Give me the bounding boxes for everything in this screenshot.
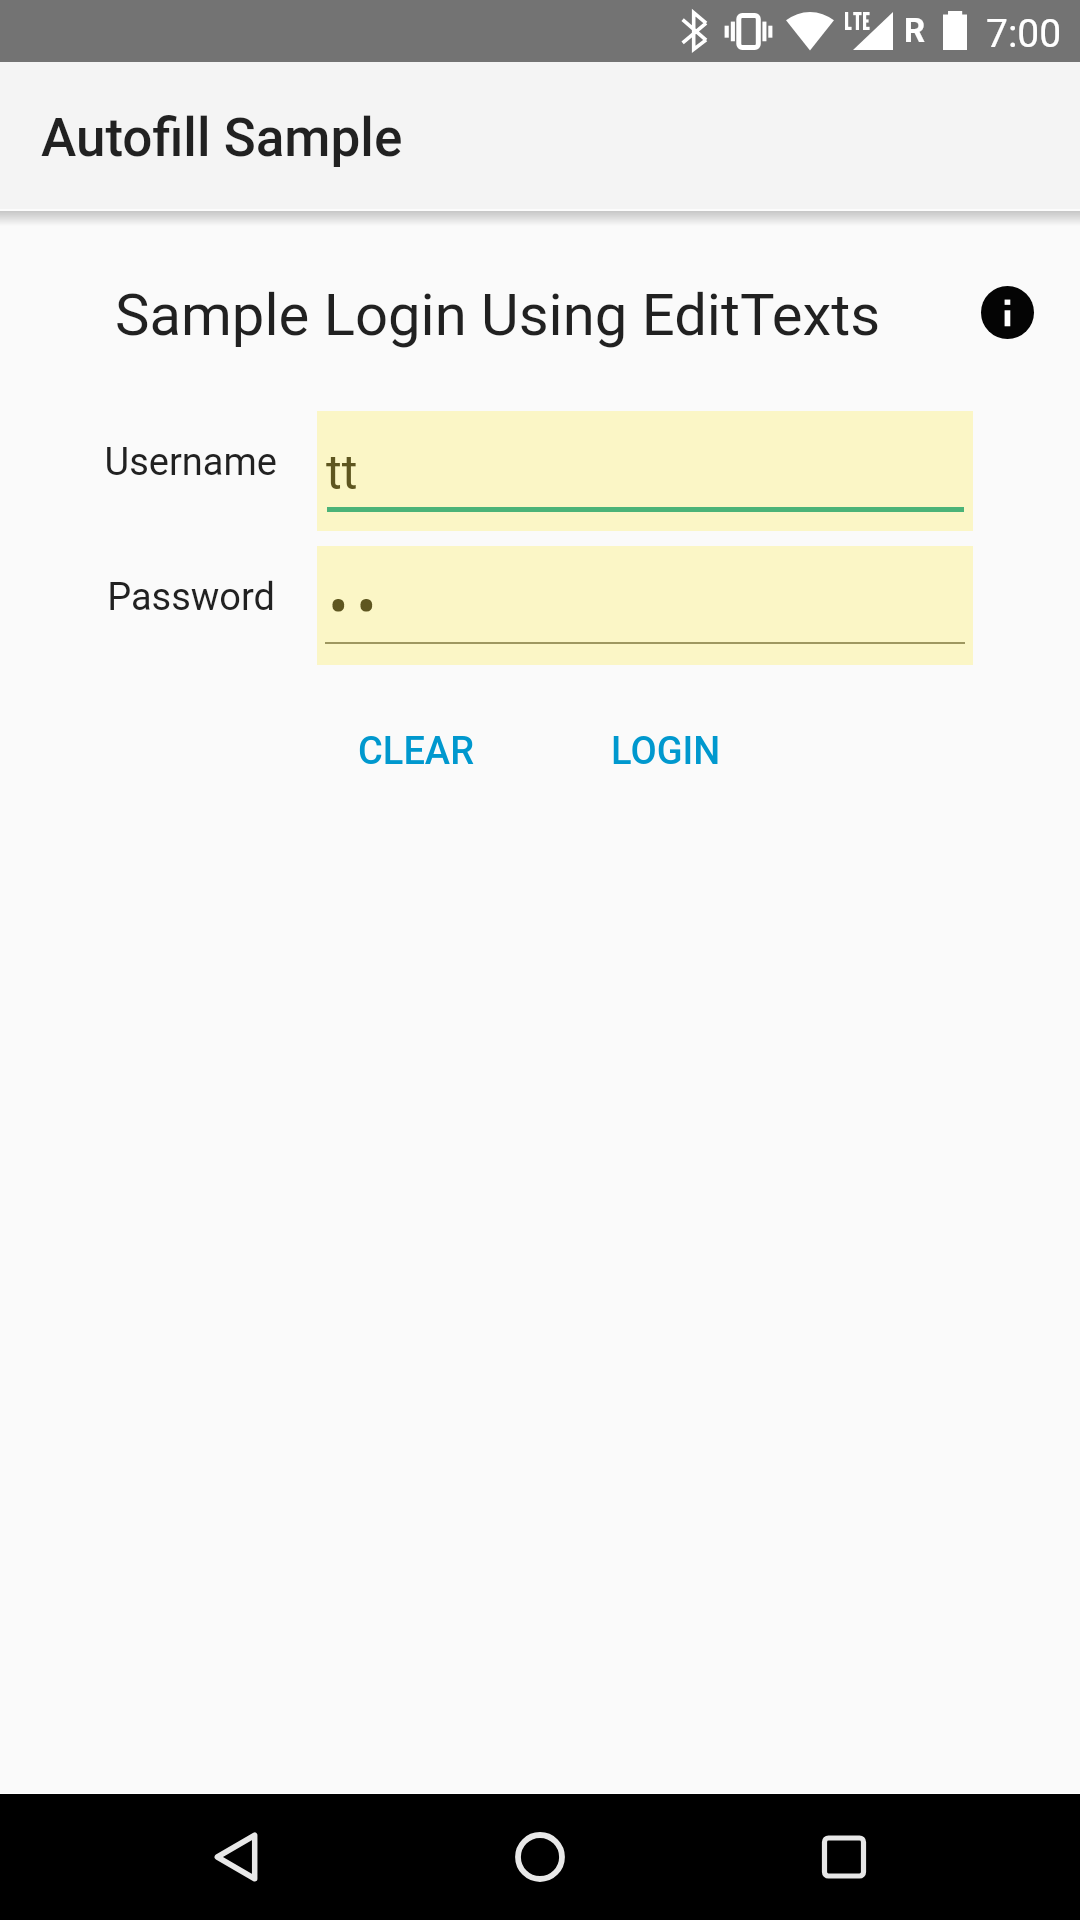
staticText: R [904, 11, 926, 50]
staticText: Username [3, 440, 277, 485]
button[interactable]: Username field [317, 411, 973, 531]
staticText: tt [326, 444, 358, 500]
staticText: Autofill Sample [41, 107, 403, 169]
button[interactable]: Home [470, 1794, 610, 1920]
button[interactable]: CLEAR [330, 709, 501, 793]
staticText: Sample Login Using EditTexts [115, 281, 881, 349]
staticText: 7:00 [986, 11, 1062, 57]
button[interactable]: LOGIN [586, 709, 746, 793]
button[interactable]: Password field [317, 546, 973, 665]
staticText: Password [2, 575, 275, 620]
button[interactable]: Recents [774, 1794, 914, 1920]
button[interactable]: Back [166, 1794, 306, 1920]
staticText: CLEAR [358, 729, 474, 774]
staticText: LOGIN [611, 729, 721, 774]
button[interactable]: Info [963, 268, 1051, 356]
